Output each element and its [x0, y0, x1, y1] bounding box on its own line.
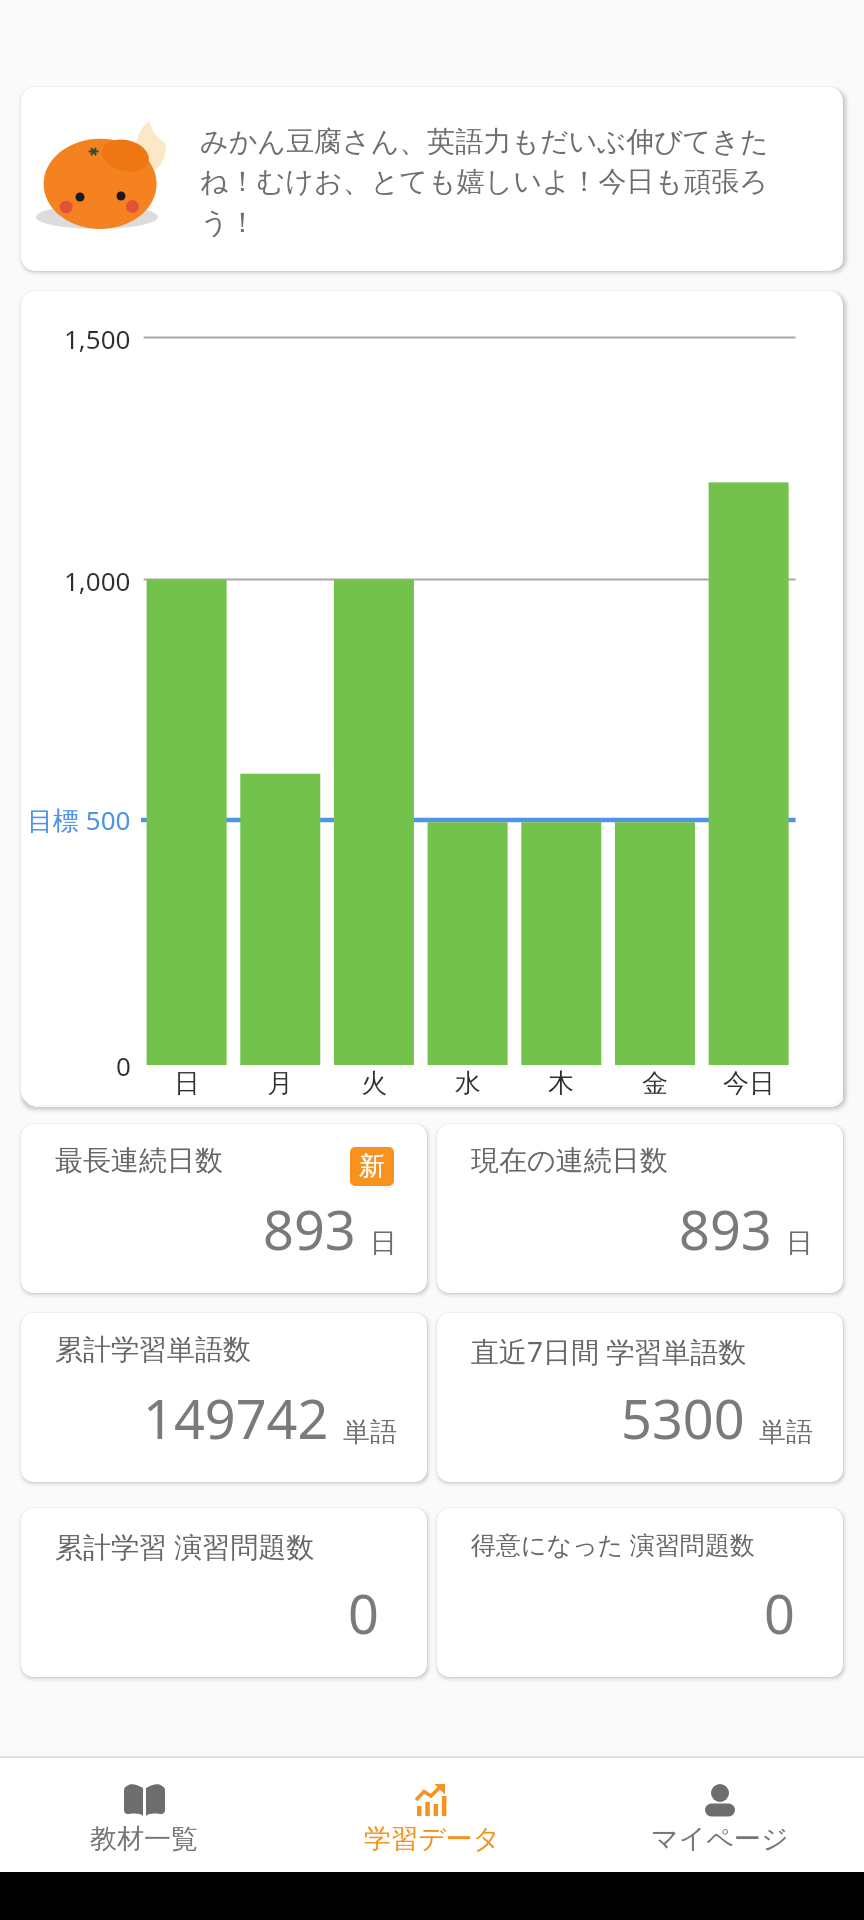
staticText: 教材一覧 [90, 1822, 198, 1856]
staticText: 累計学習 演習問題数 [55, 1527, 315, 1565]
button[interactable]: 得意になった 演習問題数 [437, 1508, 843, 1677]
staticText: 得意になった 演習問題数 [471, 1527, 755, 1561]
staticText: 現在の連続日数 [471, 1143, 668, 1178]
button[interactable]: 最長連続日数 [21, 1124, 427, 1293]
staticText: 0 [116, 1048, 131, 1083]
staticText: 単語 [343, 1415, 397, 1449]
staticText: 日 [786, 1226, 813, 1260]
staticText: 893 [263, 1192, 356, 1266]
staticText: 893 [679, 1192, 772, 1266]
staticText: 水 [455, 1067, 481, 1100]
staticText: 火 [361, 1067, 387, 1100]
staticText: 0 [764, 1576, 795, 1650]
staticText: マイページ [651, 1822, 789, 1856]
button[interactable]: マイページ [576, 1758, 864, 1872]
staticText: 1,000 [64, 563, 131, 598]
staticText: 木 [548, 1067, 574, 1100]
staticText: 149742 [143, 1381, 329, 1455]
staticText: 5300 [621, 1381, 745, 1455]
button[interactable]: 学習データ [288, 1758, 576, 1872]
staticText: 直近7日間 学習単語数 [471, 1332, 747, 1370]
staticText: 0 [348, 1576, 379, 1650]
button[interactable]: 現在の連続日数 [437, 1124, 843, 1293]
staticText: 今日 [723, 1067, 775, 1100]
staticText: 単語 [759, 1415, 813, 1449]
staticText: 新 [359, 1150, 385, 1183]
staticText: 日 [370, 1226, 397, 1260]
button[interactable]: 教材一覧 [0, 1758, 288, 1872]
staticText: 日 [174, 1067, 200, 1100]
button[interactable]: 直近7日間 学習単語数 [437, 1313, 843, 1482]
staticText: 1,500 [64, 321, 131, 356]
staticText: 最長連続日数 [55, 1143, 223, 1178]
button[interactable]: 累計学習 演習問題数 [21, 1508, 427, 1677]
staticText: 学習データ [364, 1822, 501, 1856]
staticText: 目標 500 [27, 802, 131, 838]
button[interactable]: 累計学習単語数 [21, 1313, 427, 1482]
staticText: みかん豆腐さん、英語力もだいぶ伸びてきた ね！むけお、とても嬉しいよ！今日も頑張… [200, 124, 769, 241]
staticText: 月 [267, 1067, 293, 1100]
staticText: 金 [642, 1067, 668, 1100]
staticText: 累計学習単語数 [55, 1332, 251, 1367]
